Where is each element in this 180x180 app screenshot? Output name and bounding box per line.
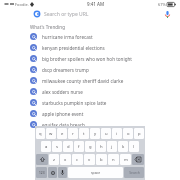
button[interactable]: b <box>96 154 107 165</box>
button[interactable]: Dictate <box>58 167 67 178</box>
button[interactable]: o <box>123 128 133 139</box>
button[interactable]: p <box>134 128 144 139</box>
button[interactable]: Search or type URL <box>0 8 180 20</box>
button[interactable]: f <box>74 141 84 152</box>
button[interactable]: u <box>101 128 111 139</box>
staticText: 123 <box>39 171 45 175</box>
button[interactable]: m <box>120 154 131 165</box>
button[interactable]: hurricane irma forecast <box>0 31 180 42</box>
staticText: k <box>122 144 125 150</box>
button[interactable]: Delete <box>132 154 144 165</box>
staticText: e <box>61 131 64 137</box>
staticText: dscp dreamers trump <box>42 67 89 73</box>
button[interactable]: w <box>46 128 56 139</box>
button[interactable]: x <box>60 154 71 165</box>
staticText: w <box>49 131 53 137</box>
staticText: n <box>112 157 115 163</box>
staticText: kenyan presidential elections <box>42 45 105 51</box>
button[interactable]: y <box>90 128 100 139</box>
staticText: Search or type URL <box>44 11 89 18</box>
button[interactable]: kenyan presidential elections <box>0 42 180 53</box>
button[interactable]: v <box>84 154 95 165</box>
button[interactable]: dscp dreamers trump <box>0 64 180 75</box>
button[interactable]: t <box>79 128 89 139</box>
button[interactable]: milwaukee county sheriff david clarke <box>0 75 180 86</box>
staticText: g <box>89 144 92 150</box>
button[interactable]: space <box>68 167 123 178</box>
button[interactable]: apple iphone event <box>0 108 180 119</box>
button[interactable]: a <box>41 141 51 152</box>
button[interactable]: i <box>112 128 122 139</box>
button[interactable]: l <box>129 141 139 152</box>
button[interactable]: Voice search <box>162 9 172 19</box>
staticText: hurricane irma forecast <box>42 34 93 40</box>
button[interactable]: d <box>63 141 73 152</box>
button[interactable]: c <box>72 154 83 165</box>
staticText: 9:41 AM <box>87 1 105 7</box>
button[interactable]: 123 <box>36 167 47 178</box>
staticText: z <box>53 157 55 163</box>
button[interactable]: r <box>68 128 78 139</box>
staticText: p <box>138 131 141 137</box>
staticText: h <box>100 144 103 150</box>
button[interactable]: big brother spoilers who won hoh tonight <box>0 53 180 64</box>
button[interactable]: n <box>108 154 119 165</box>
staticText: starbucks pumpkin spice latte <box>42 100 107 106</box>
button[interactable]: starbucks pumpkin spice latte <box>0 97 180 108</box>
staticText: i <box>116 131 118 137</box>
staticText: a <box>45 144 48 150</box>
staticText: c <box>76 157 79 163</box>
staticText: What's Trending <box>30 24 65 30</box>
button[interactable]: Shift <box>36 154 48 165</box>
staticText: b <box>100 157 103 163</box>
button[interactable]: k <box>118 141 128 152</box>
staticText: equifax data breach <box>42 122 85 128</box>
button[interactable]: z <box>49 154 59 165</box>
button[interactable]: equifax data breach <box>0 119 180 130</box>
button[interactable]: h <box>96 141 106 152</box>
staticText: v <box>88 157 91 163</box>
staticText: big brother spoilers who won hoh tonight <box>42 56 132 62</box>
staticText: d <box>67 144 70 150</box>
staticText: m <box>124 157 128 163</box>
staticText: Search <box>129 170 140 175</box>
staticText: 67% <box>158 2 166 7</box>
staticText: r <box>72 131 74 137</box>
staticText: f <box>78 144 80 150</box>
button[interactable]: e <box>57 128 67 139</box>
staticText: u <box>105 131 108 137</box>
staticText: apple iphone event <box>42 111 84 117</box>
button[interactable]: Emoji <box>48 167 57 178</box>
button[interactable]: g <box>85 141 95 152</box>
staticText: o <box>127 131 130 137</box>
staticText: milwaukee county sheriff david clarke <box>42 78 124 84</box>
button[interactable]: q <box>36 128 45 139</box>
staticText: y <box>94 131 97 137</box>
button[interactable]: alex sodders nurse <box>0 86 180 97</box>
staticText: q <box>39 131 42 137</box>
staticText: x <box>64 157 67 163</box>
staticText: s <box>56 144 59 150</box>
staticText: alex sodders nurse <box>42 89 83 95</box>
staticText: t <box>83 131 85 137</box>
staticText: space <box>91 170 101 175</box>
staticText: j <box>111 144 113 150</box>
button[interactable]: s <box>52 141 62 152</box>
button[interactable]: Search <box>124 167 144 178</box>
button[interactable]: j <box>107 141 117 152</box>
staticText: l <box>133 144 135 150</box>
staticText: Foodie. <box>15 2 29 7</box>
